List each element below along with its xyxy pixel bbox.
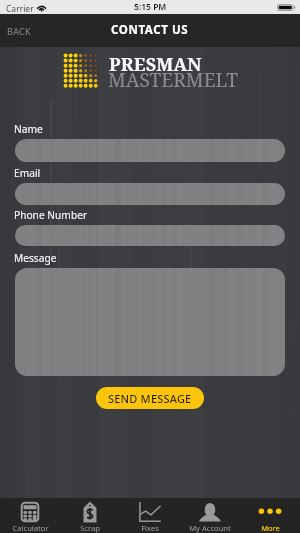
staticText: Scrap bbox=[80, 523, 100, 533]
button[interactable]: My Account bbox=[180, 498, 240, 533]
staticText: MASTERMELT bbox=[108, 67, 238, 93]
staticText: SEND MESSAGE bbox=[108, 391, 192, 406]
staticText: Fixes bbox=[141, 523, 159, 533]
staticText: CONTACT US bbox=[111, 22, 189, 38]
button[interactable]: SEND MESSAGE bbox=[96, 387, 204, 409]
staticText: BACK bbox=[7, 25, 31, 37]
button[interactable]: More bbox=[240, 498, 300, 533]
staticText: Email bbox=[14, 166, 41, 180]
staticText: PRESMAN bbox=[109, 52, 202, 77]
staticText: Phone Number bbox=[14, 208, 88, 222]
button[interactable]: Fixes bbox=[120, 498, 180, 533]
button[interactable] bbox=[15, 183, 285, 205]
staticText: Name bbox=[14, 122, 43, 136]
staticText: Message bbox=[14, 251, 57, 265]
button[interactable]: Calculator bbox=[0, 498, 60, 533]
staticText: More bbox=[261, 523, 280, 533]
button[interactable] bbox=[15, 225, 285, 246]
staticText: Calculator bbox=[12, 523, 49, 533]
button[interactable] bbox=[15, 268, 285, 376]
button[interactable] bbox=[15, 139, 285, 162]
staticText: 5:15 PM bbox=[134, 1, 167, 13]
button[interactable]: BACK bbox=[7, 14, 31, 47]
button[interactable]: Scrap bbox=[60, 498, 120, 533]
staticText: My Account bbox=[189, 523, 231, 533]
staticText: Carrier bbox=[6, 3, 34, 15]
